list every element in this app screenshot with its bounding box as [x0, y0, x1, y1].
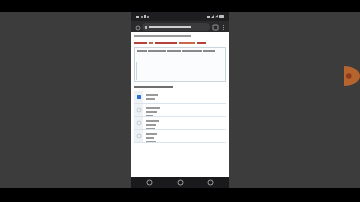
button[interactable] — [134, 104, 226, 116]
button[interactable]: Home — [176, 178, 185, 187]
button[interactable] — [134, 130, 226, 142]
button[interactable]: More options — [220, 24, 226, 30]
button[interactable] — [142, 23, 210, 31]
button[interactable] — [134, 91, 226, 103]
button[interactable]: Tabs — [212, 24, 219, 31]
button[interactable]: Back — [145, 178, 154, 187]
button[interactable] — [134, 47, 226, 82]
button[interactable]: Home — [134, 24, 141, 31]
button[interactable] — [134, 42, 226, 44]
button[interactable] — [134, 117, 226, 129]
button[interactable]: Recent apps — [206, 178, 215, 187]
